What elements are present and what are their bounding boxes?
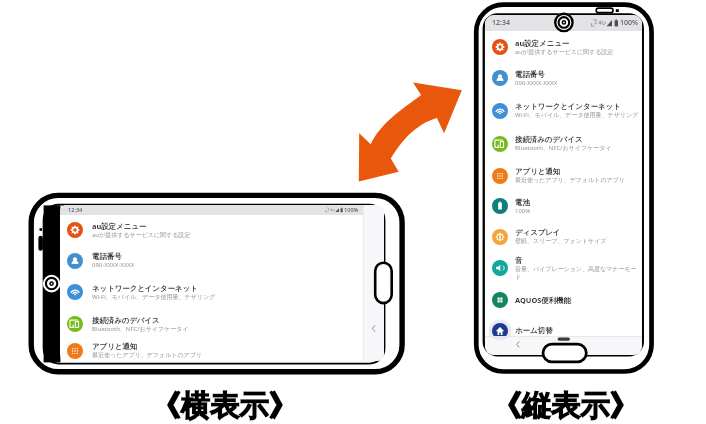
staticText: 100% xyxy=(344,206,359,214)
staticText: 090-XXXX-XXXX xyxy=(515,79,558,87)
staticText: 電話番号 xyxy=(515,70,545,79)
staticText: 12:34 xyxy=(492,18,510,28)
button[interactable]: 電池 xyxy=(485,191,642,221)
staticText: 電池 xyxy=(515,198,530,207)
staticText: 《縦表示》 xyxy=(492,388,639,424)
staticText: Wi-Fi、モバイル、データ使用量、テザリング xyxy=(92,293,216,301)
staticText: ネットワークとインターネット xyxy=(92,284,198,293)
staticText: au設定メニュー xyxy=(515,38,570,48)
staticText: 090-XXXX-XXXX xyxy=(92,261,135,269)
button[interactable]: au設定メニュー xyxy=(60,215,363,245)
staticText: ネットワークとインターネット xyxy=(515,102,621,111)
button[interactable]: 接続済みのデバイス xyxy=(60,308,363,340)
button[interactable]: 電話番号 xyxy=(60,245,363,276)
staticText: ディスプレイ xyxy=(515,228,561,237)
button[interactable]: Navigation bar xyxy=(363,205,384,361)
staticText: auが提供するサービスに関する設定 xyxy=(92,231,191,239)
button[interactable]: 音 xyxy=(485,252,642,284)
staticText: AQUOS便利機能 xyxy=(515,295,571,305)
staticText: au設定メニュー xyxy=(92,221,147,231)
staticText: 《横表示》 xyxy=(151,388,298,424)
staticText: 12:34 xyxy=(68,206,83,214)
button[interactable]: au設定メニュー xyxy=(485,31,642,62)
staticText: 最近使ったアプリ、デフォルトのアプリ xyxy=(515,176,625,184)
button[interactable]: ネットワークとインターネット xyxy=(60,276,363,308)
staticText: ホーム切替 xyxy=(515,326,553,335)
staticText: 接続済みのデバイス xyxy=(92,316,160,325)
button[interactable]: ディスプレイ xyxy=(485,221,642,252)
button[interactable]: Navigation bar xyxy=(485,336,642,355)
staticText: Wi-Fi、モバイル、データ使用量、テザリング xyxy=(515,111,639,119)
staticText: 壁紙、スリープ、フォントサイズ xyxy=(515,237,607,245)
staticText: auが提供するサービスに関する設定 xyxy=(515,48,614,56)
staticText: アプリと通知 xyxy=(92,342,138,351)
staticText: アプリと通知 xyxy=(515,167,561,176)
staticText: 接続済みのデバイス xyxy=(515,135,583,144)
staticText: 音量、バイブレーション、高度なマナーモード xyxy=(515,265,639,281)
button[interactable]: アプリと通知 xyxy=(485,160,642,191)
button[interactable]: AQUOS便利機能 xyxy=(485,284,642,315)
button[interactable]: 電話番号 xyxy=(485,62,642,94)
staticText: 電話番号 xyxy=(92,252,122,261)
staticText: 音 xyxy=(515,256,523,265)
button[interactable]: ネットワークとインターネット xyxy=(485,94,642,127)
staticText: 100% xyxy=(620,18,638,28)
staticText: 最近使ったアプリ、デフォルトのアプリ xyxy=(92,351,202,359)
staticText: Bluetooth、NFC/おサイフケータイ xyxy=(92,325,189,333)
button[interactable]: アプリと通知 xyxy=(60,340,363,361)
button[interactable]: ホーム切替 xyxy=(485,315,642,346)
button[interactable]: 接続済みのデバイス xyxy=(485,127,642,160)
other: Rotate screen xyxy=(357,81,463,183)
staticText: Bluetooth、NFC/おサイフケータイ xyxy=(515,144,612,152)
staticText: 100% xyxy=(515,207,531,215)
